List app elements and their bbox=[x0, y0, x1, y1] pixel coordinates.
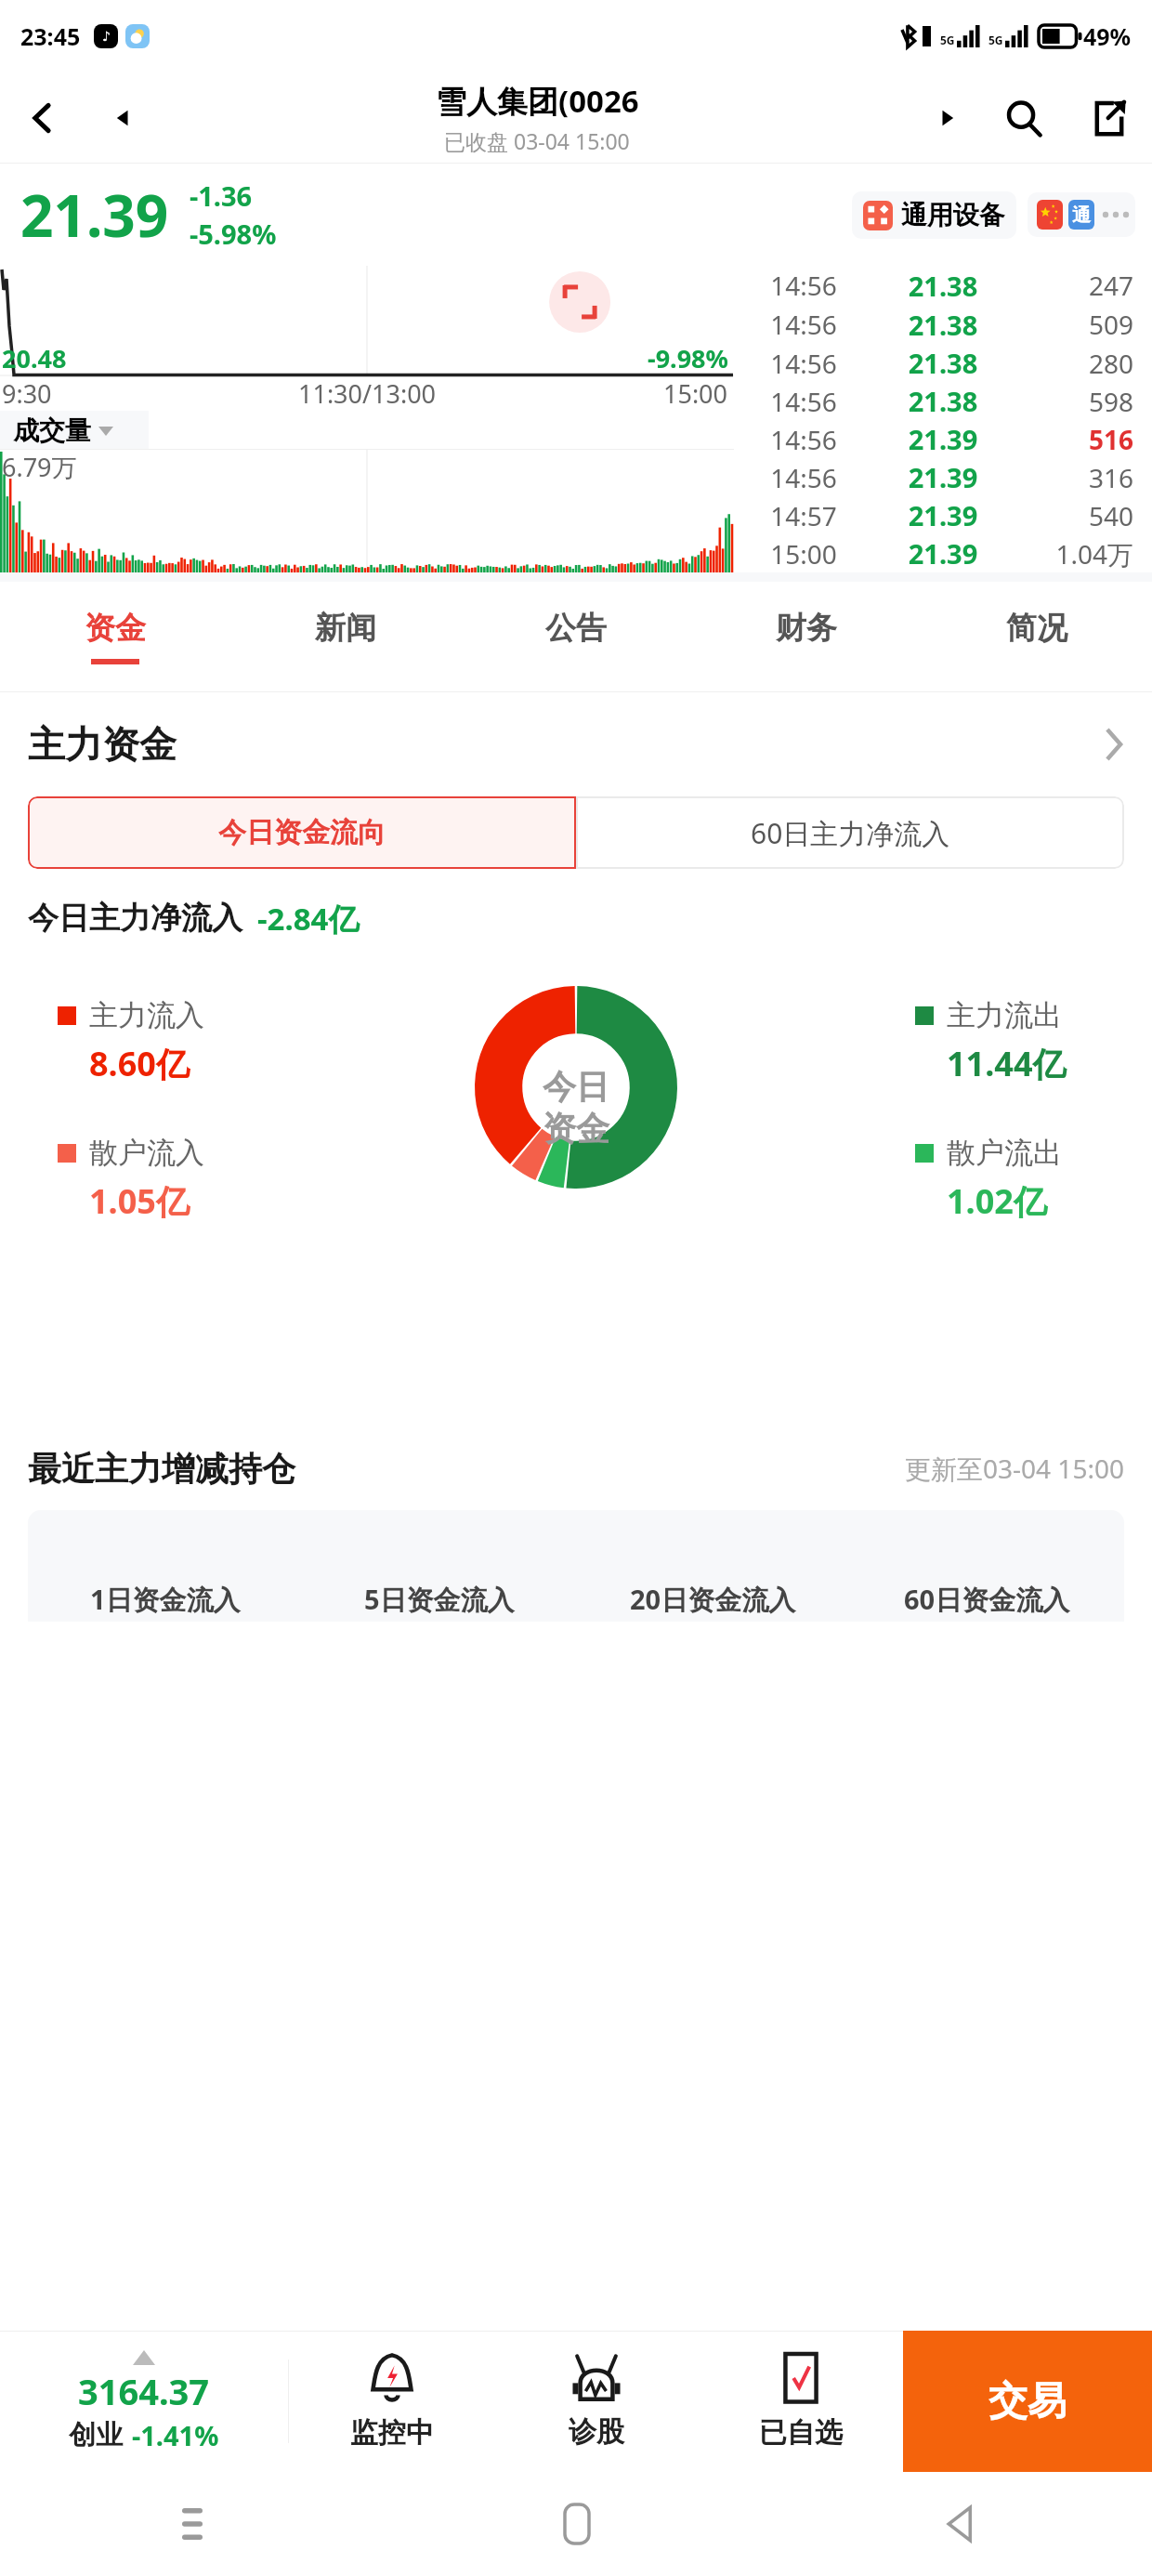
staticText: 15:00 bbox=[734, 536, 873, 572]
staticText: 财务 bbox=[776, 609, 837, 648]
staticText: 已自选 bbox=[759, 2415, 843, 2451]
staticText: 14:56 bbox=[734, 384, 873, 419]
staticText: 21.39 bbox=[20, 176, 169, 254]
staticText: 280 bbox=[1013, 346, 1133, 381]
button[interactable]: Back bbox=[0, 72, 85, 163]
staticText: 20.48 bbox=[2, 341, 67, 375]
staticText: ♪ bbox=[102, 29, 111, 44]
staticText: 509 bbox=[1013, 307, 1133, 342]
staticText: 交易 bbox=[988, 2377, 1067, 2426]
staticText: 5G bbox=[988, 33, 1003, 47]
staticText: 21.38 bbox=[873, 268, 1013, 304]
staticText: 今日资金流向 bbox=[218, 815, 386, 850]
button[interactable]: 3164.37 bbox=[0, 2331, 288, 2472]
button[interactable]: 14:57 bbox=[734, 496, 1152, 534]
button[interactable]: 通 bbox=[1028, 192, 1135, 237]
staticText: 21.38 bbox=[873, 345, 1013, 381]
button[interactable]: 14:56 bbox=[734, 266, 1152, 305]
staticText: 6.79万 bbox=[2, 450, 77, 484]
staticText: 11.44亿 bbox=[947, 1041, 1067, 1086]
staticText: 公告 bbox=[545, 609, 607, 648]
staticText: -1.41% bbox=[132, 2417, 219, 2453]
staticText: 14:56 bbox=[734, 422, 873, 457]
button[interactable]: 主力资金 bbox=[0, 692, 1152, 796]
staticText: 49% bbox=[1083, 20, 1132, 52]
button[interactable]: 交易 bbox=[903, 2331, 1152, 2472]
staticText: 通用设备 bbox=[901, 199, 1005, 231]
staticText: 1.05亿 bbox=[89, 1178, 190, 1224]
button[interactable]: 新闻 bbox=[230, 582, 461, 691]
staticText: 雪人集团(0026 bbox=[436, 80, 639, 122]
button[interactable]: Share bbox=[1067, 72, 1152, 163]
button[interactable]: 今日资金流向 bbox=[28, 796, 576, 869]
staticText: 5G bbox=[940, 33, 955, 47]
staticText: 1.02亿 bbox=[947, 1178, 1047, 1224]
staticText: 14:57 bbox=[734, 498, 873, 533]
staticText: 15:00 bbox=[663, 376, 728, 411]
button[interactable]: 14:56 bbox=[734, 305, 1152, 344]
staticText: 通 bbox=[1072, 204, 1091, 227]
button[interactable]: 60日主力净流入 bbox=[576, 796, 1124, 869]
button[interactable]: 公告 bbox=[461, 582, 691, 691]
button[interactable]: 通用设备 bbox=[852, 191, 1016, 239]
button[interactable]: 成交量 bbox=[0, 411, 149, 450]
staticText: 5日资金流入 bbox=[364, 1581, 515, 1618]
button[interactable]: 简况 bbox=[922, 582, 1152, 691]
staticText: 316 bbox=[1013, 460, 1133, 495]
staticText: 14:56 bbox=[734, 346, 873, 381]
button[interactable]: Search bbox=[981, 72, 1067, 163]
button[interactable]: 1日资金流入 bbox=[28, 1510, 1124, 1622]
staticText: 简况 bbox=[1006, 609, 1067, 648]
staticText: 9:30 bbox=[2, 376, 52, 411]
button[interactable]: 14:56 bbox=[734, 382, 1152, 420]
button[interactable]: Previous stock bbox=[85, 72, 160, 163]
staticText: 主力流出 bbox=[947, 997, 1062, 1033]
staticText: 散户流出 bbox=[947, 1135, 1062, 1171]
staticText: 3164.37 bbox=[78, 2367, 210, 2415]
button[interactable]: 财务 bbox=[691, 582, 922, 691]
staticText: 60日资金流入 bbox=[904, 1581, 1070, 1618]
staticText: 516 bbox=[1013, 422, 1133, 457]
button[interactable]: Back bbox=[768, 2472, 1152, 2576]
staticText: 21.38 bbox=[873, 383, 1013, 419]
staticText: -9.98% bbox=[648, 341, 728, 375]
button[interactable]: 15:00 bbox=[734, 534, 1152, 572]
staticText: 创业 bbox=[69, 2418, 123, 2452]
staticText: 成交量 bbox=[13, 414, 91, 447]
staticText: 20日资金流入 bbox=[630, 1581, 796, 1618]
staticText: 11:30/13:00 bbox=[298, 376, 437, 411]
staticText: 14:56 bbox=[734, 460, 873, 495]
staticText: 21.39 bbox=[873, 421, 1013, 457]
staticText: 主力流入 bbox=[89, 997, 204, 1033]
button[interactable]: 资金 bbox=[0, 582, 230, 691]
staticText: 资金 bbox=[85, 609, 146, 648]
button[interactable]: 诊股 bbox=[494, 2331, 699, 2472]
staticText: 1日资金流入 bbox=[90, 1581, 241, 1618]
staticText: 21.39 bbox=[873, 497, 1013, 533]
staticText: 21.38 bbox=[873, 307, 1013, 343]
staticText: 14:56 bbox=[734, 268, 873, 303]
staticText: 监控中 bbox=[350, 2415, 434, 2451]
staticText: 540 bbox=[1013, 498, 1133, 533]
staticText: 散户流入 bbox=[89, 1135, 204, 1171]
staticText: -2.84亿 bbox=[257, 898, 360, 940]
button[interactable]: 14:56 bbox=[734, 344, 1152, 382]
staticText: 21.39 bbox=[873, 459, 1013, 495]
button[interactable]: 已自选 bbox=[699, 2331, 903, 2472]
staticText: 主力资金 bbox=[28, 721, 177, 768]
staticText: 1.04万 bbox=[1013, 536, 1133, 572]
staticText: 21.39 bbox=[873, 535, 1013, 572]
staticText: -1.36 bbox=[190, 177, 253, 214]
button[interactable]: 监控中 bbox=[289, 2331, 494, 2472]
button[interactable]: 14:56 bbox=[734, 420, 1152, 458]
staticText: 598 bbox=[1013, 384, 1133, 419]
button[interactable]: 14:56 bbox=[734, 458, 1152, 496]
button[interactable]: Recent apps bbox=[0, 2472, 385, 2576]
staticText: 更新至03-04 15:00 bbox=[905, 1451, 1124, 1486]
staticText: 今日 bbox=[543, 1066, 609, 1108]
button[interactable]: Next stock bbox=[914, 72, 981, 163]
button[interactable]: Home bbox=[385, 2472, 768, 2576]
staticText: 资金 bbox=[543, 1108, 609, 1150]
staticText: 最近主力增减持仓 bbox=[28, 1448, 295, 1490]
staticText: 14:56 bbox=[734, 307, 873, 342]
